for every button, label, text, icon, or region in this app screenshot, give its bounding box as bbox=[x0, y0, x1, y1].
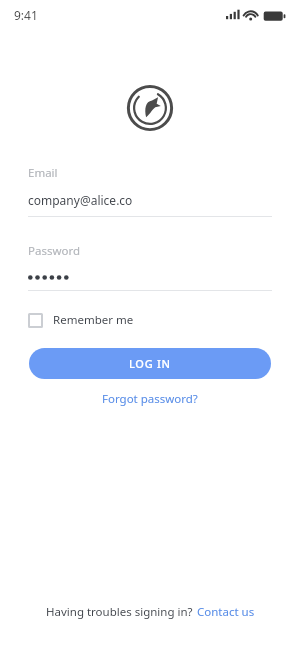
staticText: Forgot password? bbox=[102, 391, 198, 407]
staticText: Having troubles signing in? bbox=[46, 604, 193, 620]
staticText: Contact us bbox=[197, 604, 255, 620]
staticText: Password bbox=[28, 243, 81, 259]
button[interactable]: Forgot password? bbox=[96, 388, 204, 410]
staticText: 9:41 bbox=[14, 7, 38, 23]
staticText: LOG IN bbox=[129, 356, 171, 371]
button[interactable]: LOG IN bbox=[29, 348, 271, 379]
button[interactable]: Contact us bbox=[197, 604, 255, 620]
staticText: Remember me bbox=[53, 312, 134, 328]
staticText: Email bbox=[28, 165, 58, 181]
staticText: company@alice.co bbox=[28, 192, 133, 208]
button[interactable]: Remember me bbox=[25, 308, 140, 332]
